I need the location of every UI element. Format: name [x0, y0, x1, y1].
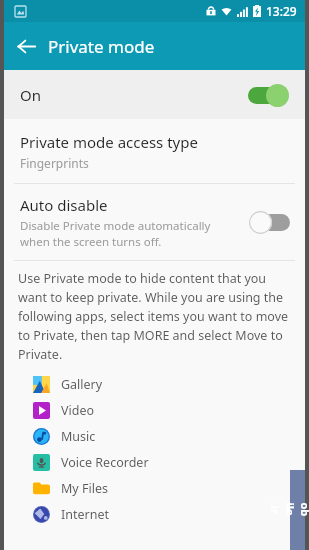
- staticText: mobile.ir: [267, 502, 309, 517]
- staticText: Video: [61, 402, 95, 419]
- staticText: Use Private mode to hide content that yo…: [18, 270, 291, 363]
- staticText: Internet: [61, 506, 109, 523]
- staticText: Voice Recorder: [61, 454, 149, 471]
- staticText: Auto disable: [20, 195, 108, 215]
- staticText: Disable Private mode automatically when …: [20, 218, 243, 249]
- button[interactable]: Auto disable: [4, 184, 305, 260]
- staticText: Fingerprints: [20, 155, 89, 171]
- staticText: On: [20, 85, 41, 105]
- button[interactable]: On: [4, 70, 305, 119]
- button[interactable]: Music: [32, 423, 305, 449]
- button[interactable]: Private mode access type: [4, 119, 305, 183]
- button[interactable]: Video: [32, 397, 305, 423]
- button[interactable]: Gallery: [32, 371, 305, 397]
- button[interactable]: Back: [4, 24, 48, 68]
- staticText: Private mode: [48, 35, 155, 58]
- staticText: Private mode access type: [20, 132, 198, 152]
- staticText: Gallery: [61, 376, 103, 393]
- button[interactable]: My Files: [32, 475, 305, 501]
- staticText: My Files: [61, 480, 108, 497]
- button[interactable]: Internet: [32, 501, 305, 527]
- staticText: 13:29: [266, 3, 297, 19]
- staticText: Music: [61, 428, 96, 445]
- button[interactable]: Voice Recorder: [32, 449, 305, 475]
